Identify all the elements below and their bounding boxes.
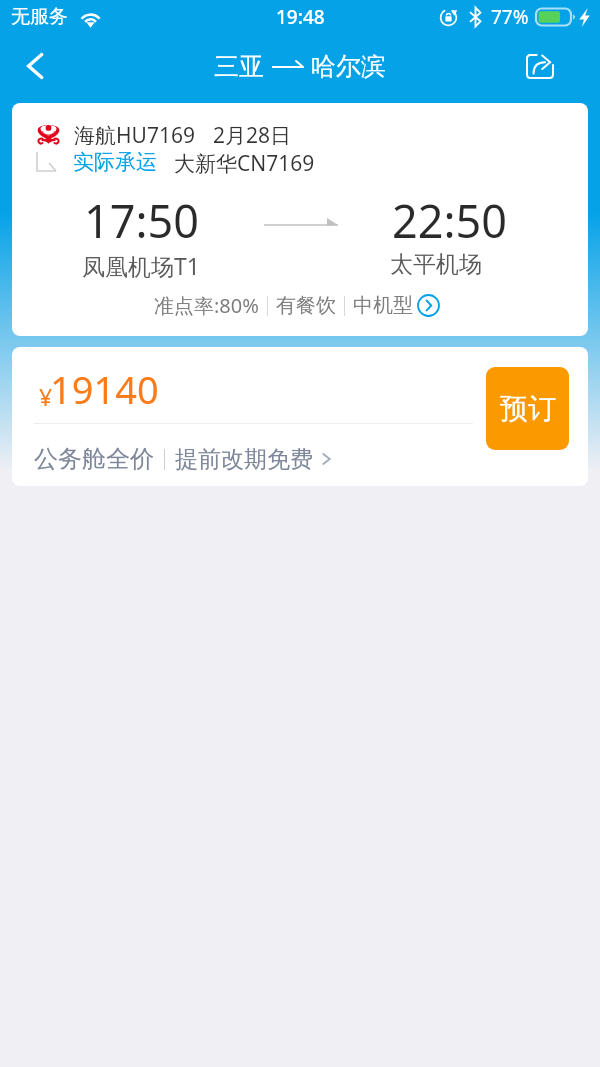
staticText: 哈尔滨 bbox=[311, 51, 386, 82]
staticText: 有餐饮 bbox=[276, 293, 336, 318]
staticText: 太平机场 bbox=[390, 250, 482, 279]
staticText: 海航HU7169 bbox=[74, 121, 195, 145]
staticText: 77% bbox=[491, 4, 529, 30]
staticText: 实际承运 bbox=[73, 149, 157, 175]
staticText: 22:50 bbox=[392, 190, 508, 251]
staticText: 提前改期免费 bbox=[175, 445, 313, 474]
staticText: 2月28日 bbox=[213, 121, 292, 145]
staticText: 17:50 bbox=[84, 190, 200, 251]
button[interactable]: 海航HU7169 bbox=[12, 103, 588, 336]
staticText: 准点率:80% bbox=[154, 292, 259, 319]
staticText: 预订 bbox=[500, 391, 556, 426]
staticText: 19:48 bbox=[276, 4, 325, 30]
staticText: 19140 bbox=[50, 363, 159, 415]
button[interactable]: Share bbox=[512, 40, 568, 92]
staticText: 三亚 bbox=[214, 51, 264, 82]
staticText: ¥ bbox=[39, 381, 53, 412]
staticText: 大新华CN7169 bbox=[174, 149, 315, 175]
button[interactable]: Back bbox=[7, 40, 63, 92]
staticText: 公务舱全价 bbox=[34, 444, 154, 474]
button[interactable]: 预订 bbox=[486, 367, 569, 450]
staticText: 无服务 bbox=[11, 5, 68, 29]
staticText: 凤凰机场T1 bbox=[82, 250, 200, 281]
staticText: 中机型 bbox=[353, 293, 413, 318]
